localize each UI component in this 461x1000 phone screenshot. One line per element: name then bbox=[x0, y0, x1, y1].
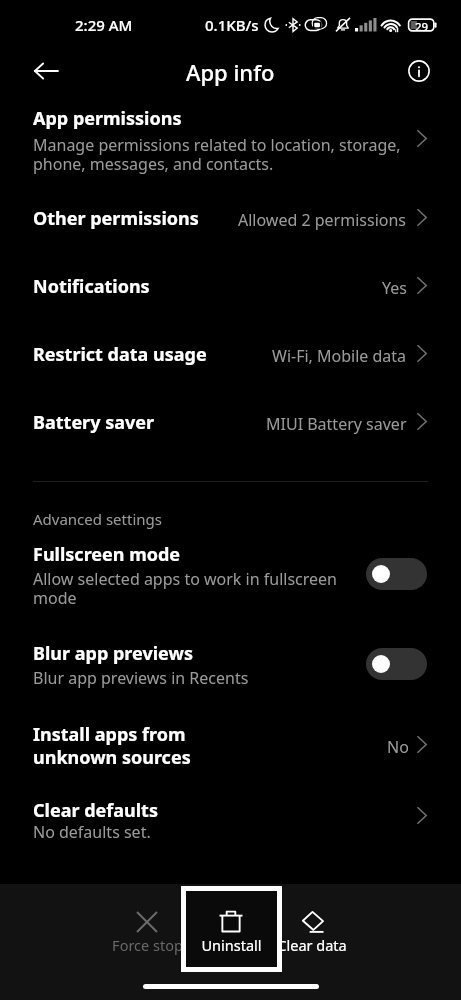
staticText: Wi-Fi, Mobile data bbox=[272, 345, 407, 367]
button[interactable]: Other permissions bbox=[0, 197, 461, 265]
staticText: Battery saver bbox=[33, 410, 155, 435]
staticText: Blur app previews in Recents bbox=[33, 667, 249, 689]
staticText: Manage permissions related to location, … bbox=[33, 134, 401, 174]
staticText: 2:29 AM bbox=[75, 15, 133, 35]
staticText: Fullscreen mode bbox=[33, 542, 181, 567]
button[interactable]: Notifications bbox=[0, 265, 461, 333]
staticText: Advanced settings bbox=[33, 509, 162, 529]
button[interactable]: Blur app previews bbox=[366, 648, 427, 680]
staticText: Restrict data usage bbox=[33, 342, 207, 367]
button[interactable]: Uninstall bbox=[181, 886, 281, 972]
staticText: Allow selected apps to work in fullscree… bbox=[33, 568, 337, 609]
staticText: Force stop bbox=[112, 935, 183, 955]
staticText: Other permissions bbox=[33, 206, 199, 231]
staticText: App info bbox=[186, 57, 275, 87]
button[interactable]: Fullscreen mode bbox=[0, 535, 461, 627]
staticText: Notifications bbox=[33, 274, 150, 299]
button[interactable]: Clear data bbox=[262, 886, 362, 972]
button[interactable]: App permissions bbox=[0, 98, 461, 190]
button[interactable]: App details bbox=[397, 49, 442, 94]
staticText: Yes bbox=[382, 277, 407, 299]
staticText: Uninstall bbox=[201, 935, 262, 955]
button[interactable]: Blur app previews bbox=[0, 634, 461, 726]
button[interactable]: Back bbox=[23, 49, 68, 94]
staticText: 0.1KB/s bbox=[205, 15, 259, 35]
staticText: No defaults set. bbox=[33, 821, 151, 843]
staticText: Clear data bbox=[277, 935, 347, 955]
staticText: Allowed 2 permissions bbox=[238, 209, 407, 231]
button[interactable]: Restrict data usage bbox=[0, 333, 461, 401]
staticText: App permissions bbox=[33, 106, 182, 131]
staticText: No bbox=[387, 736, 409, 758]
button[interactable]: Fullscreen mode bbox=[366, 558, 427, 590]
staticText: Blur app previews bbox=[33, 641, 193, 666]
staticText: 29 bbox=[415, 19, 429, 35]
button[interactable]: Install apps from unknown sources bbox=[0, 716, 461, 780]
staticText: Clear defaults bbox=[33, 798, 158, 823]
button[interactable]: Clear defaults bbox=[0, 792, 461, 854]
button[interactable]: Force stop bbox=[97, 886, 197, 972]
staticText: MIUI Battery saver bbox=[266, 413, 407, 435]
button[interactable]: Battery saver bbox=[0, 401, 461, 469]
staticText: Install apps from unknown sources bbox=[33, 722, 191, 769]
